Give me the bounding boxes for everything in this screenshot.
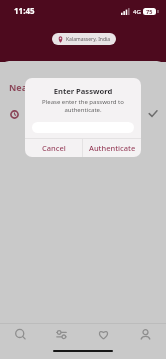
staticText: 11:45 bbox=[14, 5, 35, 16]
button[interactable]: Profile bbox=[124, 324, 166, 345]
staticText: 4G bbox=[133, 8, 141, 16]
staticText: Cancel bbox=[42, 143, 66, 153]
staticText: Nearby bbox=[9, 81, 42, 93]
staticText: Enter Password bbox=[25, 86, 141, 96]
button[interactable]: Search bbox=[0, 324, 41, 345]
staticText: Authenticate bbox=[89, 143, 136, 153]
button[interactable]: Kalamassery, India bbox=[52, 33, 116, 45]
staticText: Please enter the password to authenticat… bbox=[35, 98, 131, 114]
button[interactable]: Cancel bbox=[25, 139, 82, 157]
button[interactable]: Favorites bbox=[82, 324, 124, 345]
button[interactable]: Authenticate bbox=[83, 139, 141, 157]
staticText: Kalamassery, India bbox=[66, 36, 111, 43]
staticText: 75 bbox=[146, 8, 153, 15]
button[interactable]: Filters bbox=[41, 324, 82, 345]
